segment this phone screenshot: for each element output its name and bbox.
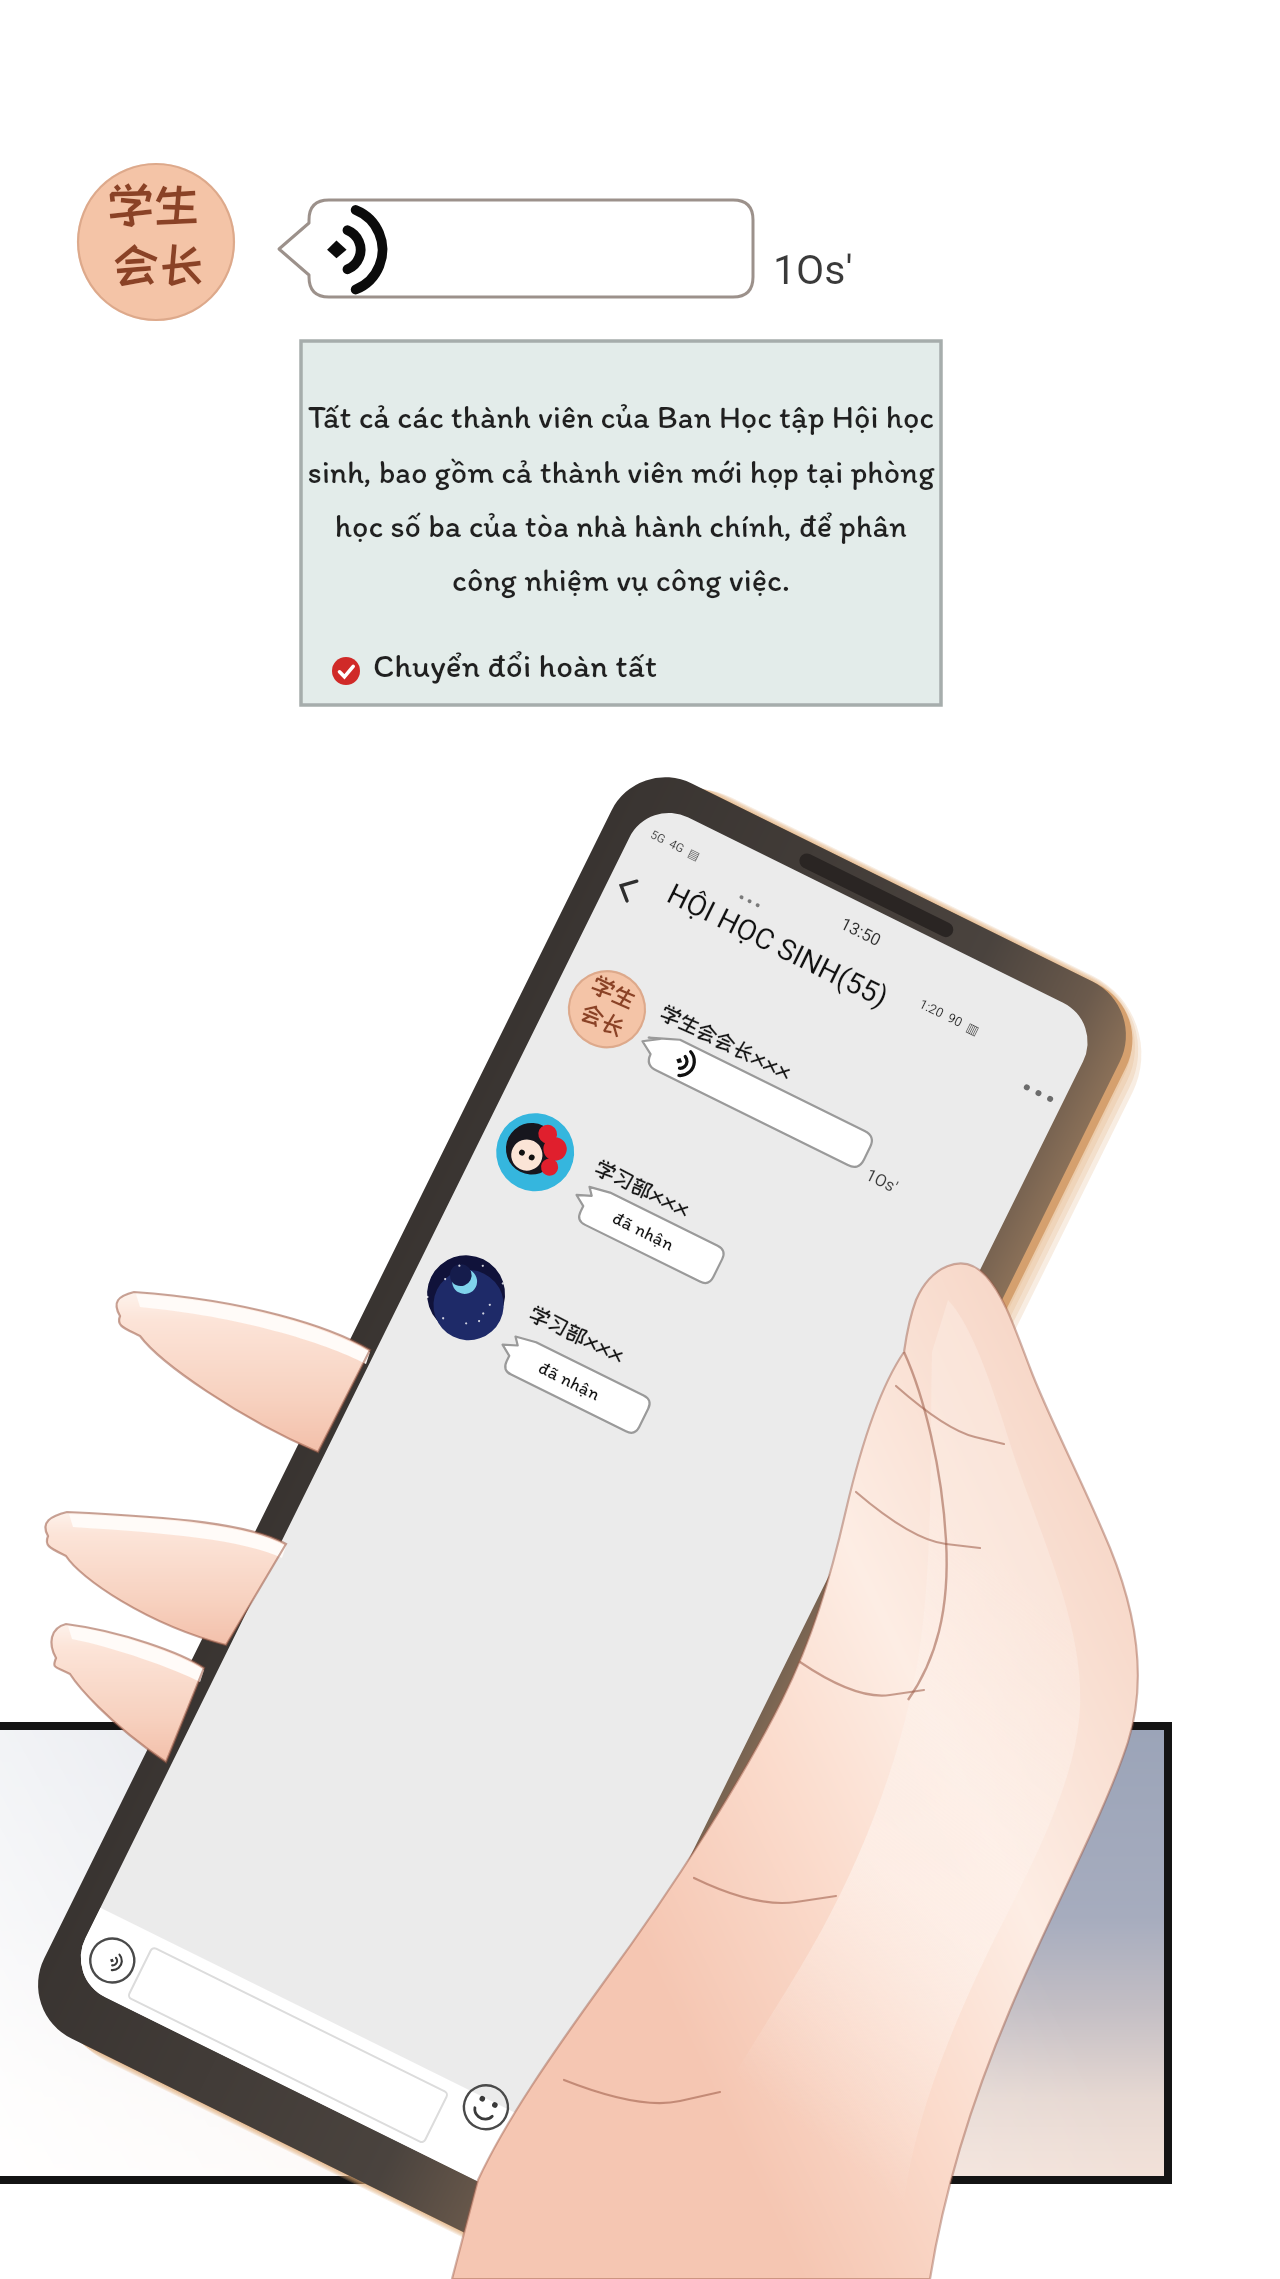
button[interactable] — [0, 0, 1280, 2279]
